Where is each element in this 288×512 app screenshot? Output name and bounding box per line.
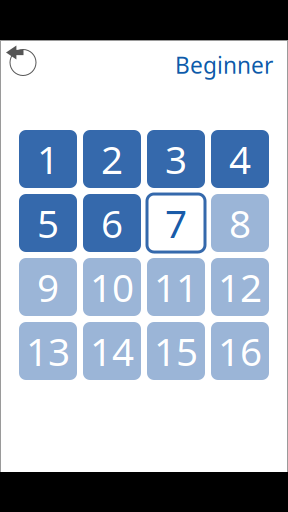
button[interactable]: 5	[19, 194, 77, 252]
button[interactable]: 2	[83, 130, 141, 188]
staticText: 4	[229, 133, 251, 185]
button[interactable]: 8	[211, 194, 269, 252]
staticText: 14	[90, 325, 134, 377]
staticText: 11	[154, 261, 198, 313]
button[interactable]: 16	[211, 322, 269, 380]
button[interactable]: 7	[147, 194, 205, 252]
staticText: 12	[218, 261, 262, 313]
staticText: 9	[37, 261, 59, 313]
staticText: 13	[26, 325, 70, 377]
button[interactable]: 13	[19, 322, 77, 380]
button[interactable]: 6	[83, 194, 141, 252]
button[interactable]: 15	[147, 322, 205, 380]
staticText: 15	[154, 325, 198, 377]
staticText: 16	[218, 325, 262, 377]
staticText: 2	[101, 133, 123, 185]
button[interactable]: 14	[83, 322, 141, 380]
button[interactable]: 4	[211, 130, 269, 188]
staticText: 10	[90, 261, 134, 313]
staticText: 1	[37, 133, 59, 185]
staticText: 7	[165, 197, 187, 249]
staticText: 8	[229, 197, 251, 249]
staticText: Beginner	[175, 50, 273, 80]
staticText: 6	[101, 197, 123, 249]
button[interactable]: Back	[6, 45, 40, 82]
button[interactable]: 10	[83, 258, 141, 316]
button[interactable]: 3	[147, 130, 205, 188]
button[interactable]: 11	[147, 258, 205, 316]
staticText: 3	[165, 133, 187, 185]
button[interactable]: 1	[19, 130, 77, 188]
staticText: 5	[37, 197, 59, 249]
button[interactable]: 9	[19, 258, 77, 316]
button[interactable]: 12	[211, 258, 269, 316]
